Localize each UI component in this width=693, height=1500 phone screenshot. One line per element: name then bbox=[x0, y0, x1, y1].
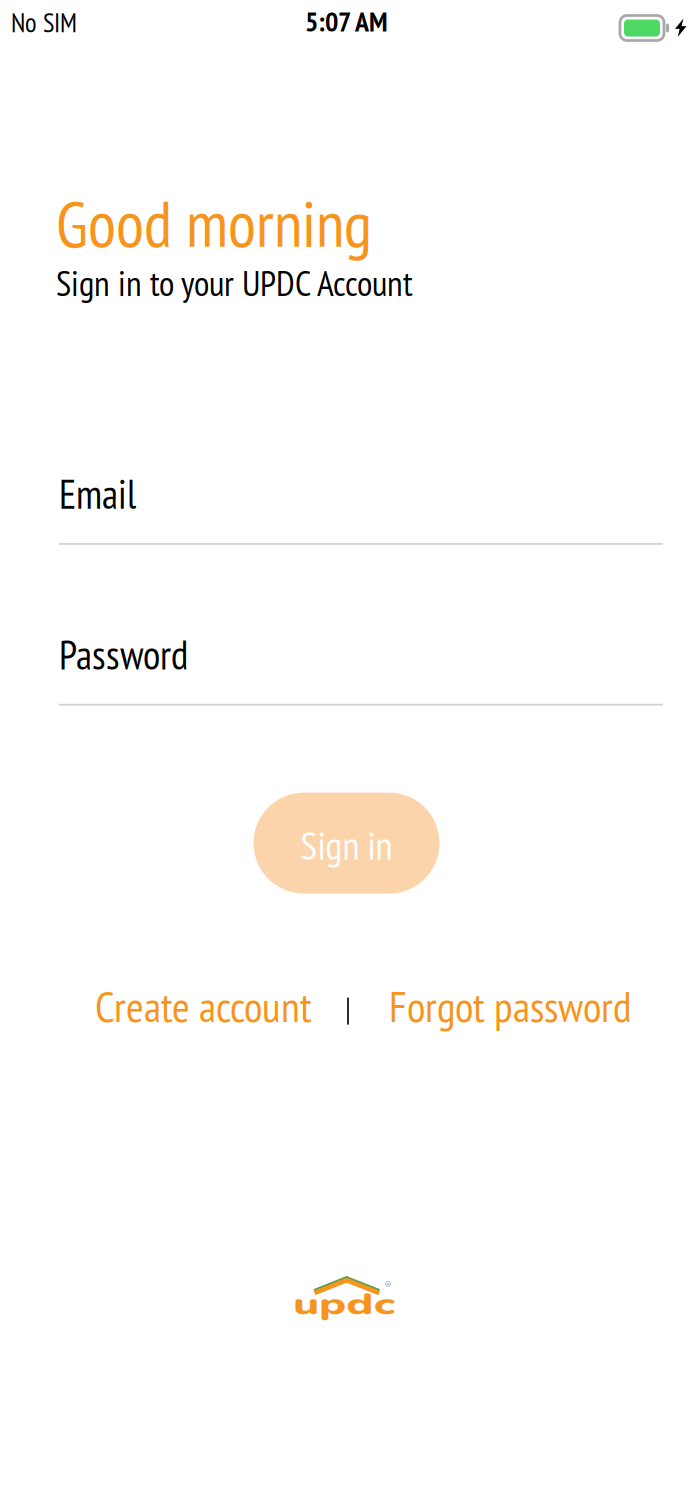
staticText: Email bbox=[59, 468, 136, 520]
button[interactable]: Sign in bbox=[253, 793, 439, 894]
staticText: Good morning bbox=[56, 181, 372, 265]
staticText: 5:07 AM bbox=[305, 3, 388, 39]
staticText: Forgot password bbox=[389, 979, 631, 1034]
button[interactable]: Forgot password bbox=[389, 979, 634, 1035]
staticText: Password bbox=[59, 629, 188, 681]
staticText: Sign in bbox=[300, 820, 392, 870]
staticText: ® bbox=[384, 1278, 391, 1293]
staticText: Sign in to your UPDC Account bbox=[56, 260, 413, 306]
button[interactable]: Create account bbox=[95, 979, 313, 1035]
staticText: updc bbox=[310, 1285, 377, 1325]
staticText: Create account bbox=[95, 979, 312, 1034]
staticText: No SIM bbox=[11, 5, 77, 39]
